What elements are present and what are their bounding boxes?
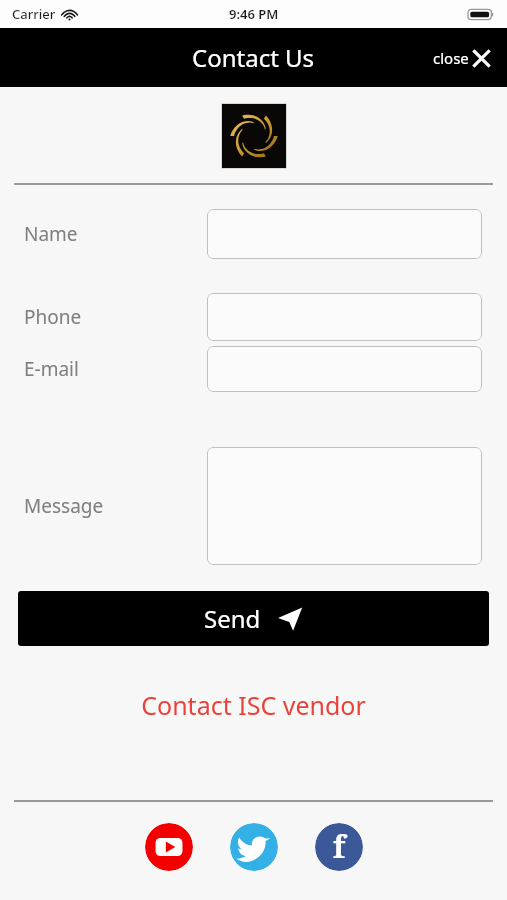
- staticText: 9:46 PM: [229, 5, 279, 23]
- staticText: close: [433, 48, 469, 68]
- staticText: E-mail: [24, 356, 207, 382]
- staticText: Send: [204, 602, 261, 635]
- staticText: Name: [24, 221, 207, 247]
- staticText: Carrier: [12, 5, 56, 23]
- button[interactable]: Name input field: [207, 209, 482, 259]
- button[interactable]: Phone input field: [207, 293, 482, 341]
- button[interactable]: Send: [18, 591, 489, 646]
- button[interactable]: Message input field: [207, 447, 482, 565]
- button[interactable]: Facebook: [315, 823, 363, 871]
- button[interactable]: Close: [417, 36, 507, 80]
- button[interactable]: Contact ISC vendor: [129, 684, 378, 726]
- staticText: Message: [24, 493, 207, 519]
- button[interactable]: Company logo: [221, 103, 287, 169]
- staticText: Contact ISC vendor: [141, 688, 366, 722]
- staticText: Phone: [24, 304, 207, 330]
- button[interactable]: Twitter: [230, 823, 278, 871]
- button[interactable]: E-mail input field: [207, 346, 482, 392]
- staticText: Contact Us: [192, 41, 315, 74]
- button[interactable]: YouTube: [145, 823, 193, 871]
- staticText: f: [333, 826, 346, 867]
